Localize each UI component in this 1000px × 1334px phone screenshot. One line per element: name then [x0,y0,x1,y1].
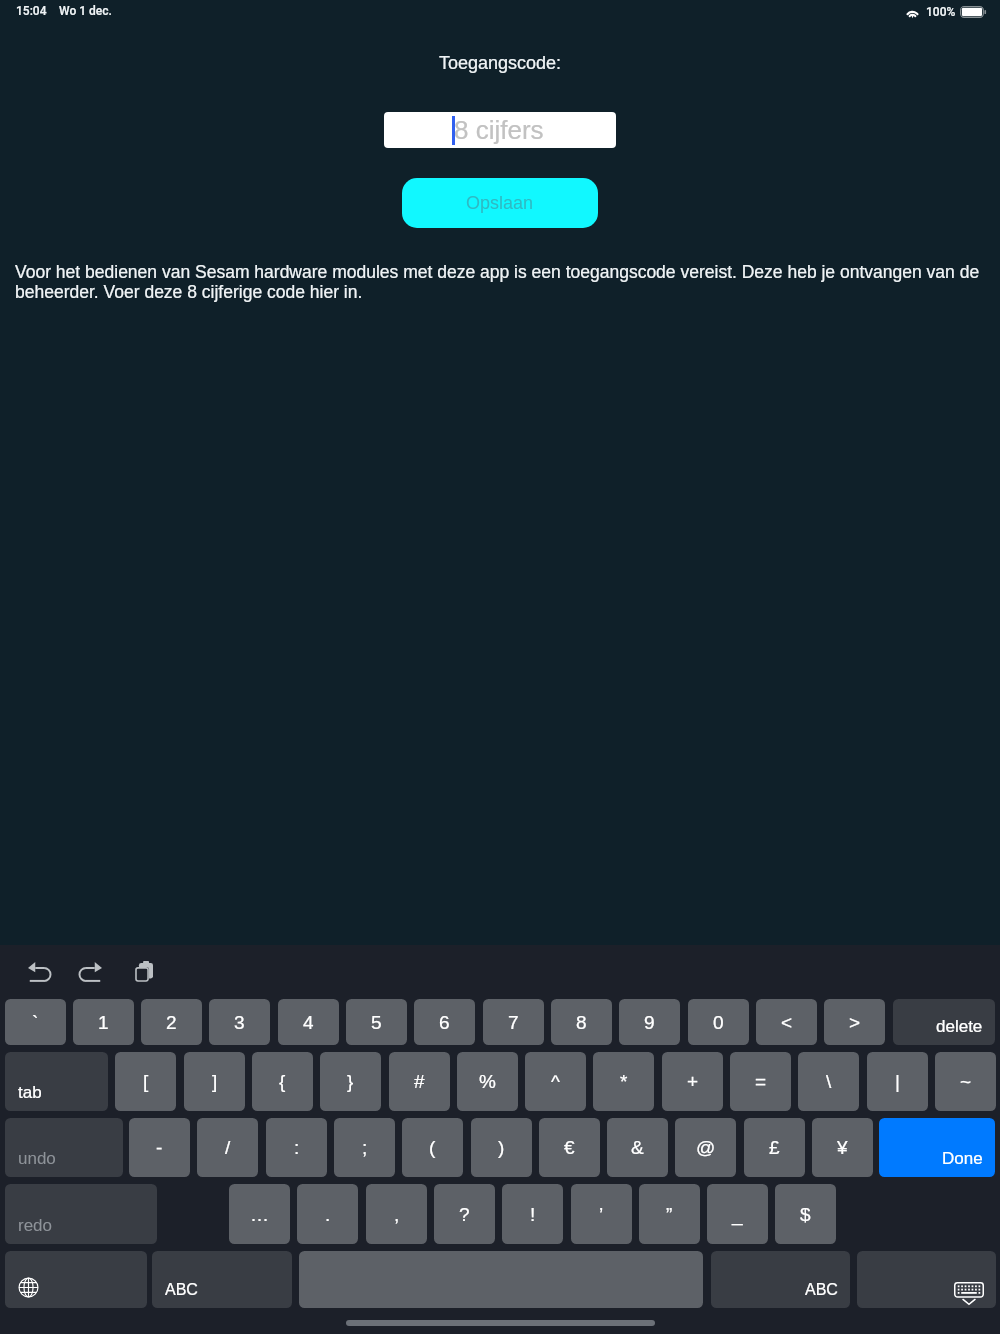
button[interactable]: Hide keyboard [857,1251,996,1308]
button[interactable]: # [389,1052,450,1111]
button[interactable]: 5 [346,999,407,1045]
button[interactable]: + [662,1052,723,1111]
staticText: 9 [644,1012,655,1033]
staticText: | [895,1071,900,1092]
button[interactable]: > [824,999,885,1045]
button[interactable]: ^ [525,1052,586,1111]
button[interactable]: \ [798,1052,859,1111]
button[interactable]: * [593,1052,654,1111]
button[interactable]: ~ [935,1052,996,1111]
button[interactable]: Done [879,1118,995,1177]
button[interactable]: tab [5,1052,108,1111]
staticText: ABC [165,1281,198,1299]
staticText: ABC [805,1281,838,1299]
staticText: Voor het bedienen van Sesam hardware mod… [15,262,987,301]
button[interactable]: 7 [483,999,544,1045]
button[interactable]: } [320,1052,381,1111]
staticText: - [156,1137,163,1158]
staticText: Opslaan [466,193,534,213]
staticText: ! [530,1204,536,1225]
staticText: [ [143,1071,149,1092]
button[interactable]: [ [115,1052,176,1111]
button[interactable]: / [197,1118,258,1177]
staticText: € [564,1137,575,1158]
button[interactable]: € [539,1118,600,1177]
staticText: Toegangscode: [439,53,562,73]
button[interactable]: 8 cijfers [384,112,616,148]
button[interactable]: 1 [73,999,134,1045]
staticText: undo [18,1149,56,1168]
button[interactable]: { [252,1052,313,1111]
staticText: ’ [599,1204,604,1225]
staticText: ^ [551,1071,560,1092]
button[interactable]: @ [675,1118,736,1177]
staticText: Done [942,1149,983,1168]
staticText: # [414,1071,425,1092]
button[interactable]: Redo [80,962,102,982]
button[interactable]: _ [707,1184,768,1244]
button[interactable]: ” [639,1184,700,1244]
staticText: = [755,1071,767,1092]
staticText: % [479,1071,496,1092]
staticText: 100% [926,5,956,19]
button[interactable]: ¥ [812,1118,873,1177]
button[interactable]: ’ [571,1184,632,1244]
staticText: 7 [508,1012,519,1033]
button[interactable]: | [867,1052,928,1111]
button[interactable]: ` [5,999,66,1045]
staticText: $ [800,1204,811,1225]
button[interactable]: 9 [619,999,680,1045]
button[interactable]: ABC [711,1251,850,1308]
staticText: / [225,1137,231,1158]
staticText: 0 [713,1012,724,1033]
button[interactable]: ? [434,1184,495,1244]
button[interactable]: ABC [152,1251,292,1308]
staticText: . [325,1204,331,1225]
button[interactable]: ! [502,1184,563,1244]
staticText: ) [498,1137,505,1158]
button[interactable]: delete [893,999,995,1045]
button[interactable]: - [129,1118,190,1177]
button[interactable]: 6 [414,999,475,1045]
staticText: * [620,1071,628,1092]
button[interactable]: £ [744,1118,805,1177]
staticText: _ [732,1204,743,1225]
staticText: 5 [371,1012,382,1033]
button[interactable]: % [457,1052,518,1111]
button[interactable]: undo [5,1118,123,1177]
button[interactable]: ; [334,1118,395,1177]
button[interactable]: < [756,999,817,1045]
button[interactable]: 4 [278,999,339,1045]
staticText: delete [936,1017,983,1036]
staticText: + [687,1071,699,1092]
staticText: … [250,1204,269,1225]
button[interactable]: Opslaan [402,178,598,228]
staticText: 1 [98,1012,109,1033]
button[interactable]: : [266,1118,327,1177]
staticText: < [781,1012,793,1033]
button[interactable]: 3 [209,999,270,1045]
button[interactable]: … [229,1184,290,1244]
button[interactable]: = [730,1052,791,1111]
button[interactable]: redo [5,1184,157,1244]
button[interactable]: , [366,1184,427,1244]
button[interactable]: ( [402,1118,463,1177]
button[interactable]: Undo [28,962,50,982]
staticText: 15:04 [16,4,47,18]
staticText: ¥ [837,1137,848,1158]
button[interactable]: . [297,1184,358,1244]
button[interactable]: ) [471,1118,532,1177]
button[interactable]: 2 [141,999,202,1045]
button[interactable]: $ [775,1184,836,1244]
button[interactable]: 8 [551,999,612,1045]
button[interactable]: & [607,1118,668,1177]
button[interactable]: Paste [135,961,153,982]
staticText: , [394,1204,400,1225]
staticText: £ [769,1137,780,1158]
staticText: } [347,1071,354,1092]
staticText: & [631,1137,644,1158]
button[interactable]: 0 [688,999,749,1045]
button[interactable]: Change keyboard [5,1251,147,1308]
button[interactable]: ] [184,1052,245,1111]
